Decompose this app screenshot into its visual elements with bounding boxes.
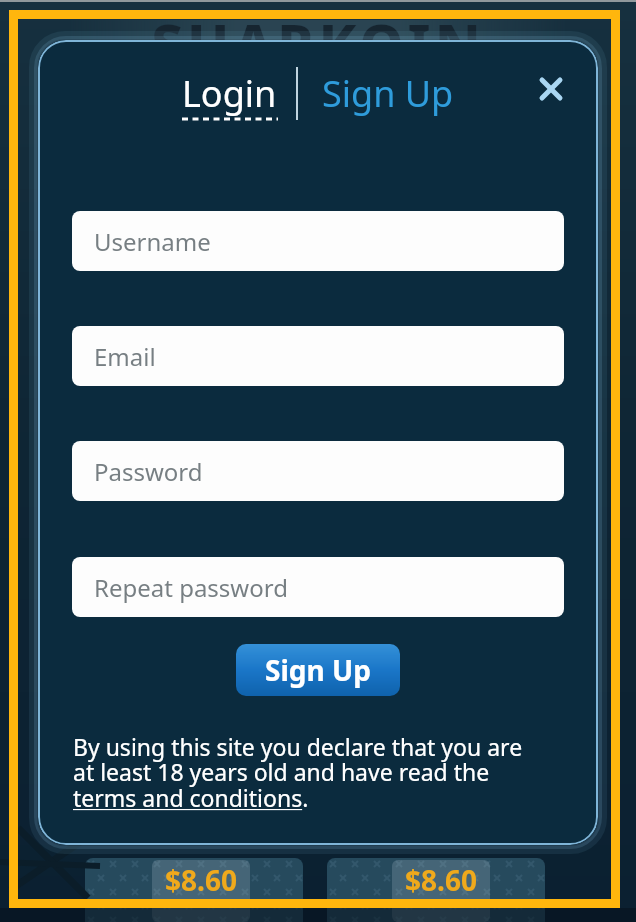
button[interactable]: Password bbox=[72, 441, 564, 501]
staticText: Email bbox=[94, 340, 156, 373]
staticText: Login bbox=[182, 69, 277, 118]
staticText: $8.60 bbox=[165, 861, 237, 899]
staticText: Username bbox=[94, 225, 211, 258]
button[interactable]: Repeat password bbox=[72, 557, 564, 617]
staticText: $8.60 bbox=[405, 861, 477, 899]
staticText: Sign Up bbox=[265, 651, 371, 689]
staticText: Sign Up bbox=[322, 69, 454, 118]
staticText: Password bbox=[94, 455, 203, 488]
staticText: Repeat password bbox=[94, 571, 288, 604]
button[interactable]: Sign Up bbox=[236, 644, 400, 696]
staticText: By using this site you declare that you … bbox=[73, 731, 523, 814]
staticText: SHARKOIN bbox=[0, 5, 636, 81]
button[interactable] bbox=[526, 64, 576, 114]
button[interactable]: Email bbox=[72, 326, 564, 386]
button[interactable]: Username bbox=[72, 211, 564, 271]
button[interactable]: Sign Up bbox=[308, 62, 468, 124]
button[interactable]: Login bbox=[174, 62, 284, 124]
